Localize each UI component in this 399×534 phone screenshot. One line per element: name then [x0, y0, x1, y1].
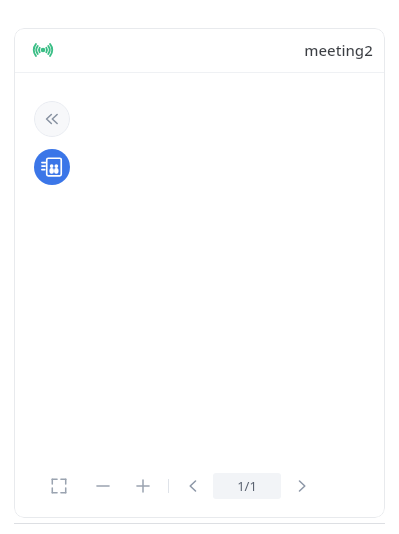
button[interactable]: Next page: [289, 472, 314, 500]
button[interactable]: Whiteboard participants: [34, 149, 70, 185]
button[interactable]: Collapse panel: [34, 101, 70, 137]
button[interactable]: Broadcast status: [26, 33, 60, 67]
button[interactable]: 1/1: [213, 473, 281, 499]
staticText: meeting2: [304, 40, 373, 60]
button[interactable]: Zoom out: [88, 471, 118, 501]
button[interactable]: Previous page: [179, 472, 207, 500]
staticText: 1/1: [237, 477, 257, 495]
button[interactable]: Zoom in: [128, 471, 158, 501]
button[interactable]: Fit to screen: [44, 471, 74, 501]
